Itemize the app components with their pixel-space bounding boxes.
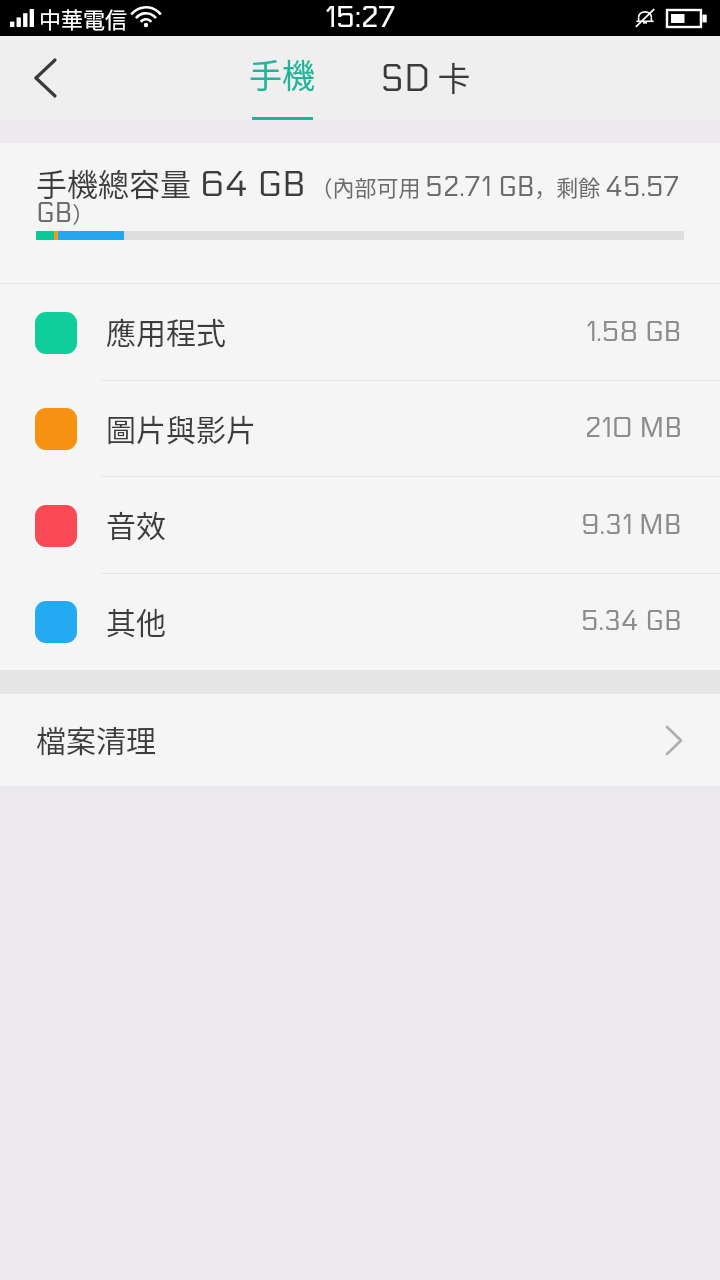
- staticText: 手機: [249, 50, 315, 98]
- button[interactable]: Back: [0, 36, 92, 120]
- button[interactable]: SD 卡: [355, 36, 495, 120]
- staticText: 音效: [106, 502, 166, 545]
- staticText: 9.31 MB: [581, 509, 682, 541]
- staticText: 5.34 GB: [581, 605, 682, 637]
- staticText: 檔案清理: [36, 717, 156, 760]
- button[interactable]: 應用程式: [0, 284, 720, 381]
- staticText: 其他: [106, 599, 166, 642]
- button[interactable]: 檔案清理: [0, 694, 720, 786]
- staticText: 圖片與影片: [106, 406, 256, 449]
- staticText: 手機總容量 64 GB （內部可用 52.71 GB，剩餘 45.57 GB）: [36, 160, 684, 229]
- other: Silent mode: [635, 7, 655, 29]
- staticText: 15:27: [325, 1, 396, 35]
- staticText: 應用程式: [106, 309, 226, 352]
- button[interactable]: 圖片與影片: [0, 381, 720, 477]
- staticText: 中華電信: [39, 2, 128, 34]
- staticText: 210 MB: [585, 412, 682, 444]
- staticText: SD 卡: [380, 53, 471, 101]
- button[interactable]: 其他: [0, 574, 720, 670]
- button[interactable]: 音效: [0, 477, 720, 574]
- staticText: 1.58 GB: [586, 316, 682, 348]
- button[interactable]: 手機: [212, 36, 352, 120]
